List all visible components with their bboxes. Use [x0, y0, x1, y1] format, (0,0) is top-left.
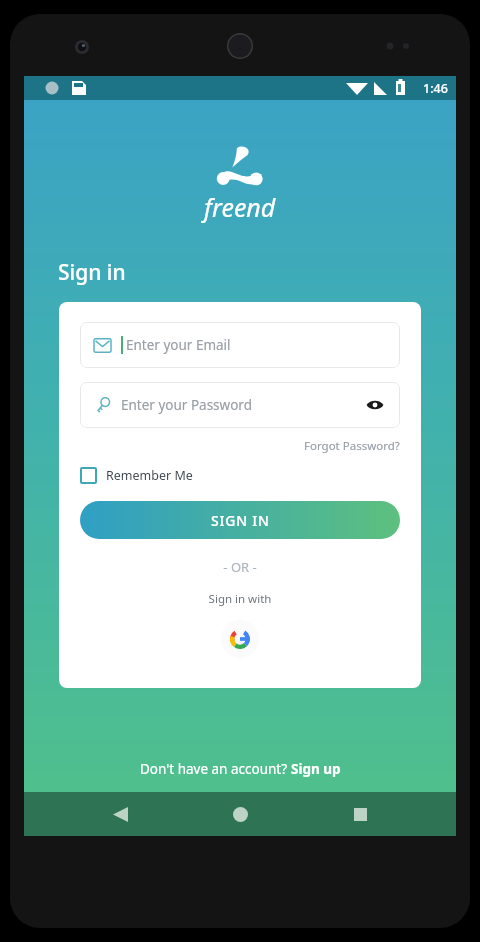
staticText: Sign in — [58, 258, 126, 287]
staticText: Enter your Email — [126, 336, 386, 354]
button[interactable]: Back — [96, 792, 144, 836]
staticText: Sign in with — [80, 591, 400, 607]
staticText: SIGN IN — [211, 511, 270, 530]
staticText: Don't have an account? — [140, 760, 291, 778]
button[interactable]: Don't have an account? — [140, 760, 341, 778]
staticText: Sign up — [291, 760, 341, 778]
button[interactable]: SIGN IN — [80, 501, 400, 539]
button[interactable]: Recent apps — [336, 792, 384, 836]
button[interactable]: Home — [216, 792, 264, 836]
staticText: Remember Me — [106, 467, 193, 484]
button[interactable]: Enter your Email — [80, 322, 400, 368]
button[interactable]: Forgot Password? — [304, 438, 400, 454]
button[interactable]: Sign in with Google — [221, 620, 259, 658]
button[interactable]: Enter your Password — [80, 382, 400, 428]
button[interactable]: Show password — [364, 394, 386, 416]
button[interactable]: Remember Me — [80, 467, 193, 484]
staticText: freend — [204, 190, 276, 224]
staticText: Enter your Password — [121, 396, 364, 414]
staticText: - OR - — [80, 558, 400, 576]
staticText: 1:46 — [423, 80, 448, 97]
